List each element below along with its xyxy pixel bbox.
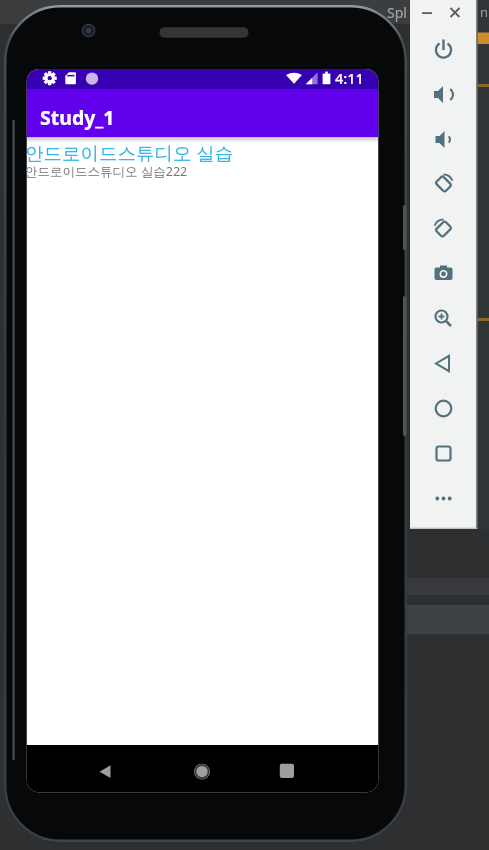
staticText: 안드로이드스튜디오 실습222 <box>25 163 188 180</box>
button[interactable] <box>427 483 460 515</box>
button[interactable] <box>427 303 460 335</box>
button[interactable] <box>427 34 460 66</box>
button[interactable] <box>427 258 460 290</box>
button[interactable] <box>269 748 305 792</box>
button[interactable] <box>447 4 465 22</box>
button[interactable] <box>427 168 460 200</box>
staticText: 안드로이드스튜디오 실습 <box>25 140 234 165</box>
button[interactable] <box>427 438 460 470</box>
button[interactable]: 안드로이드스튜디오 실습 <box>25 140 378 182</box>
button[interactable] <box>184 748 220 792</box>
button[interactable] <box>427 213 460 245</box>
staticText: n <box>480 3 489 21</box>
button[interactable] <box>427 348 460 380</box>
staticText: Spl <box>387 3 407 22</box>
button[interactable] <box>427 124 460 156</box>
button[interactable] <box>86 748 122 792</box>
button[interactable] <box>419 4 437 22</box>
button[interactable] <box>427 79 460 111</box>
staticText: Study_1 <box>40 104 115 131</box>
button[interactable] <box>427 393 460 425</box>
staticText: 4:11 <box>335 68 364 88</box>
